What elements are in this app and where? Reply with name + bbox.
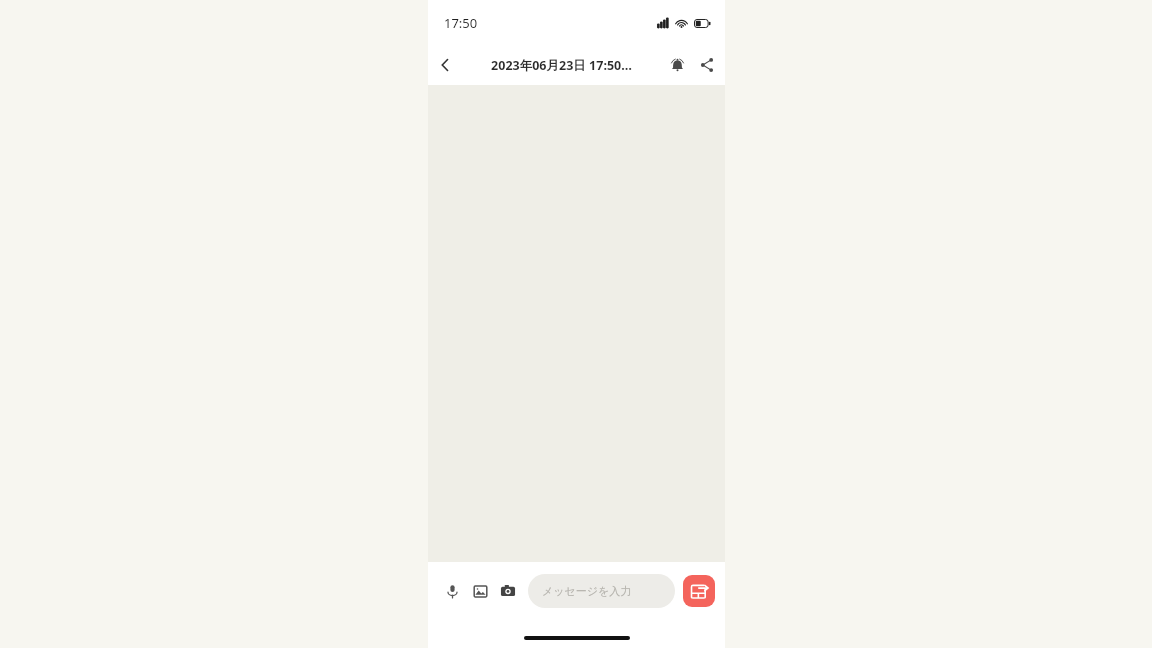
button[interactable]: Camera	[494, 577, 522, 605]
button[interactable]: Photo	[466, 577, 494, 605]
button[interactable]: Share	[693, 49, 721, 81]
button[interactable]: Notifications	[661, 49, 693, 81]
staticText: メッセージを入力	[542, 584, 632, 598]
button[interactable]: Back	[428, 48, 462, 82]
button[interactable]: メッセージを入力	[528, 574, 675, 608]
staticText: 17:50	[444, 14, 478, 32]
button[interactable]: Send template	[683, 575, 715, 607]
button[interactable]: Voice message	[438, 577, 466, 605]
button[interactable]: 2023年06月23日 17:50…	[462, 57, 661, 74]
